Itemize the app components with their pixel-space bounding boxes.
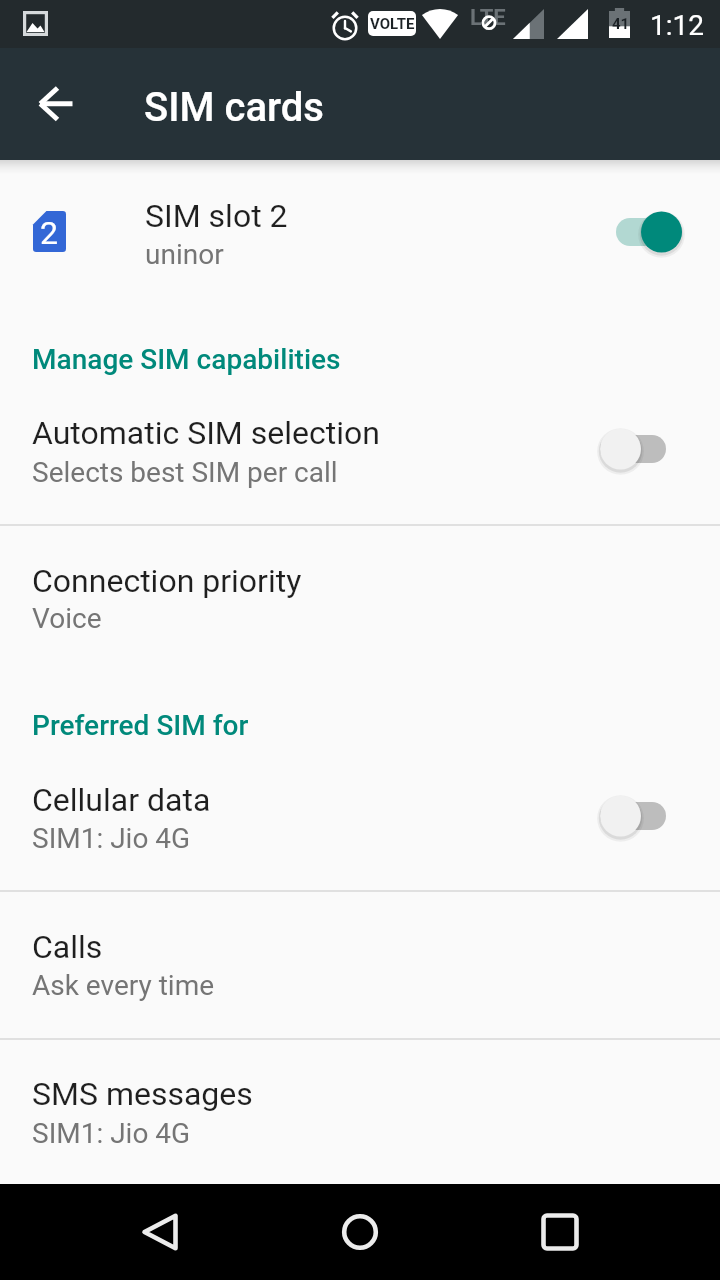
button[interactable]: Cellular data <box>0 758 720 890</box>
staticText: Voice <box>32 602 102 635</box>
staticText: SIM1: Jio 4G <box>32 1117 191 1150</box>
staticText: Automatic SIM selection <box>32 414 380 452</box>
button[interactable]: SMS messages <box>0 1040 720 1184</box>
button[interactable]: 2 <box>0 166 720 286</box>
button[interactable]: On <box>612 206 686 258</box>
staticText: 41 <box>612 15 630 33</box>
button[interactable]: Connection priority <box>0 526 720 666</box>
staticText: Manage SIM capabilities <box>32 343 341 376</box>
button[interactable]: Off <box>596 790 670 842</box>
staticText: SIM cards <box>144 84 324 131</box>
staticText: 1:12 <box>650 9 704 42</box>
staticText: SIM slot 2 <box>145 197 288 235</box>
staticText: Connection priority <box>32 562 302 600</box>
button[interactable]: Recent apps <box>500 1192 620 1272</box>
staticText: LTE <box>470 5 506 31</box>
button[interactable]: Home <box>300 1192 420 1272</box>
staticText: Calls <box>32 928 103 966</box>
staticText: Selects best SIM per call <box>32 456 338 489</box>
staticText: Preferred SIM for <box>32 709 249 742</box>
button[interactable]: Automatic SIM selection <box>0 392 720 524</box>
staticText: 2 <box>40 214 58 252</box>
staticText: SIM1: Jio 4G <box>32 822 191 855</box>
button[interactable]: Calls <box>0 892 720 1038</box>
staticText: Ask every time <box>32 969 215 1002</box>
button[interactable]: Off <box>596 423 670 475</box>
staticText: uninor <box>145 238 224 271</box>
staticText: Cellular data <box>32 781 211 819</box>
staticText: VOLTE <box>370 15 415 33</box>
button[interactable]: Navigate up <box>16 64 96 144</box>
button[interactable]: Back <box>100 1192 220 1272</box>
staticText: SMS messages <box>32 1075 253 1113</box>
